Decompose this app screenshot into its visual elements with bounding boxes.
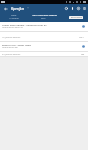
staticText: Your messages waiting bbox=[32, 14, 57, 17]
staticText: open bbox=[41, 17, 46, 19]
button[interactable]: READ MORE bbox=[69, 16, 83, 19]
button[interactable]: Refresh bbox=[63, 4, 69, 12]
staticText: READ MORE bbox=[71, 16, 82, 19]
staticText: Latest news update - attention from all bbox=[2, 23, 47, 26]
staticText: Report runs - about news bbox=[2, 43, 31, 46]
button[interactable]: Delete bbox=[69, 4, 75, 12]
button[interactable]: Star bbox=[80, 23, 86, 29]
staticText: Feb bbox=[81, 53, 85, 56]
staticText: Mar 1 bbox=[79, 36, 85, 39]
staticText: Kpmjkn bbox=[11, 6, 25, 11]
button[interactable]: Latest news update - attention from all bbox=[0, 22, 88, 32]
staticText: Inbox bbox=[11, 14, 17, 17]
staticText: 10 Journal Results bbox=[2, 36, 79, 39]
staticText: Lorem ipsum dolor sit bbox=[2, 26, 23, 29]
button[interactable]: More options bbox=[81, 4, 87, 12]
button[interactable]: Back bbox=[2, 5, 9, 12]
button[interactable]: 10 Journal Results bbox=[0, 32, 88, 42]
button[interactable]: Sync bbox=[75, 4, 81, 12]
button[interactable]: Report runs - about news bbox=[0, 42, 88, 52]
button[interactable]: Star bbox=[80, 43, 86, 49]
button[interactable]: 24 Journal Results bbox=[0, 52, 88, 57]
staticText: 17 unread bbox=[9, 17, 19, 20]
staticText: Lorem ipsum dol bbox=[2, 46, 18, 49]
staticText: 24 Journal Results bbox=[2, 53, 81, 56]
